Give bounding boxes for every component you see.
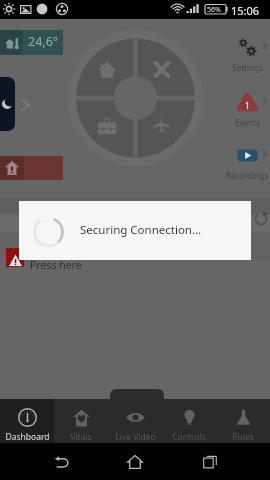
button[interactable]: Expand panel	[110, 389, 164, 401]
button[interactable]: Back	[47, 448, 75, 476]
button[interactable]: Dashboard	[0, 399, 54, 443]
staticText: Controls	[172, 431, 206, 443]
button[interactable]: Recordings	[214, 139, 270, 183]
button[interactable]: Securing Connection	[19, 201, 251, 260]
button[interactable]: Alarm alert	[6, 248, 24, 267]
staticText: 56%	[207, 5, 221, 15]
button[interactable]: Expand	[19, 97, 31, 113]
button[interactable]: Recent apps	[196, 448, 224, 476]
button[interactable]: Home	[121, 448, 149, 476]
button[interactable]: Night mode	[0, 77, 15, 131]
staticText: Events	[235, 117, 260, 128]
staticText: Dashboard	[5, 431, 50, 443]
button[interactable]: Settings	[214, 31, 270, 75]
button[interactable]: Controls	[162, 399, 216, 443]
button[interactable]: Live Video	[108, 399, 162, 443]
staticText: Vitals	[70, 431, 92, 443]
staticText: 15:06	[231, 3, 260, 18]
staticText: Settings	[232, 62, 263, 73]
staticText: Rules	[232, 431, 254, 443]
other: Mode selector	[0, 0, 270, 480]
button[interactable]: Rules	[216, 399, 270, 443]
staticText: Live Video	[115, 431, 156, 443]
button[interactable]: House alarm	[0, 156, 63, 180]
staticText: Press here	[30, 258, 82, 272]
staticText: Securing Connection…	[80, 222, 202, 238]
button[interactable]: Indoor temperature 24,6 degrees	[0, 30, 63, 55]
staticText: Recordings	[226, 170, 268, 181]
button[interactable]: Vitals	[54, 399, 108, 443]
button[interactable]: Events	[214, 86, 270, 130]
staticText: 24,6°	[28, 33, 59, 50]
